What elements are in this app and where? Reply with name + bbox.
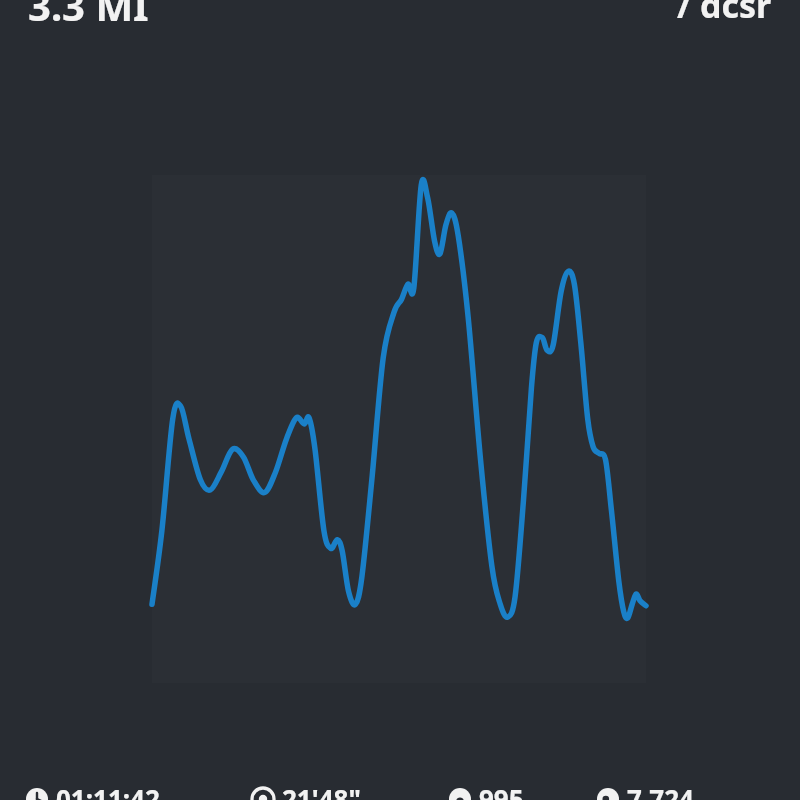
button[interactable]: / dcsr xyxy=(677,0,772,28)
button[interactable]: 3.3 MI xyxy=(28,0,677,32)
button[interactable]: 21'48" xyxy=(252,781,449,800)
staticText: 01:11:42 xyxy=(56,781,160,800)
button[interactable]: 7,724 xyxy=(597,781,774,800)
staticText: 7,724 xyxy=(627,781,694,800)
staticText: 3.3 MI xyxy=(28,0,149,32)
staticText: 995 xyxy=(479,781,524,800)
staticText: 21'48" xyxy=(282,781,361,800)
button[interactable]: 01:11:42 xyxy=(26,781,252,800)
staticText: / dcsr xyxy=(677,0,772,28)
button[interactable]: Elevation chart xyxy=(152,175,646,683)
button[interactable]: 995 xyxy=(449,781,597,800)
